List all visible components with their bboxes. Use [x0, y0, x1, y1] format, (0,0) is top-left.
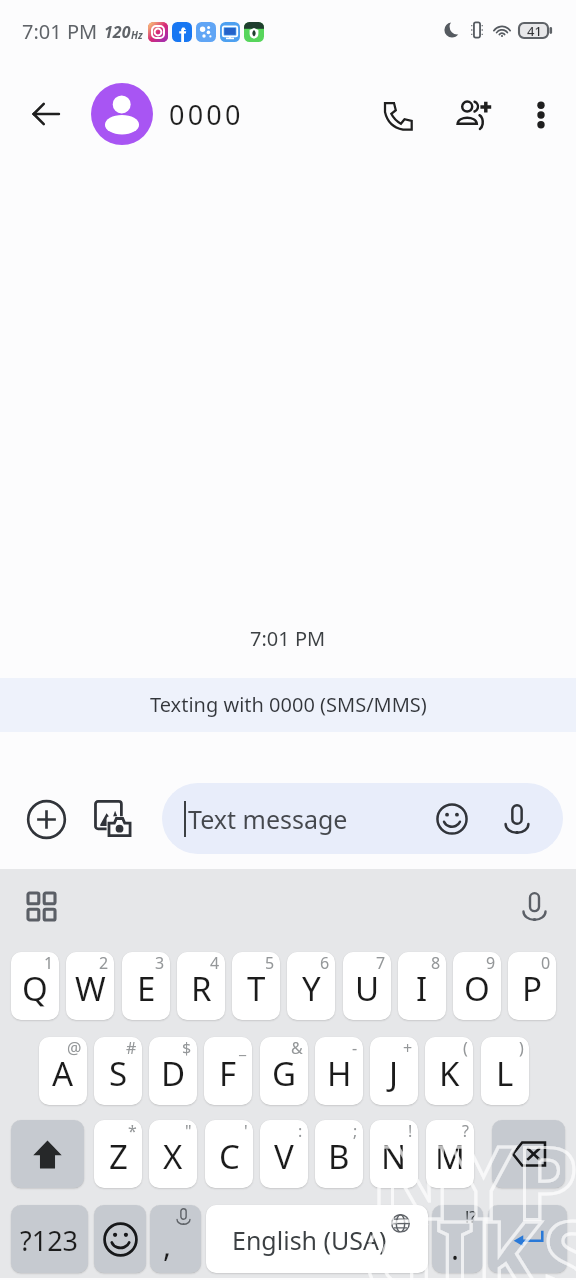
button[interactable]: ; — [315, 1120, 363, 1188]
staticText: 120 — [104, 21, 131, 43]
staticText: 7 — [376, 952, 386, 974]
button[interactable]: Period — [432, 1205, 483, 1273]
staticText: . — [451, 1228, 460, 1269]
button[interactable]: Text message — [162, 783, 563, 854]
staticText: * — [128, 1120, 137, 1142]
staticText: 8 — [431, 952, 441, 974]
staticText: D — [161, 1051, 186, 1096]
button[interactable]: Add person — [445, 86, 502, 143]
staticText: 1 — [44, 952, 54, 974]
staticText: ? — [462, 1120, 469, 1142]
staticText: 0000 — [169, 96, 244, 133]
staticText: ; — [353, 1120, 358, 1142]
staticText: 41 — [527, 22, 542, 39]
button[interactable]: Enter — [488, 1205, 567, 1273]
button[interactable]: Emoji — [94, 1205, 146, 1273]
button[interactable]: ! — [370, 1120, 418, 1188]
staticText: " — [185, 1120, 192, 1142]
button[interactable]: Call — [368, 86, 425, 143]
staticText: ( — [463, 1037, 468, 1059]
button[interactable]: _ — [204, 1037, 252, 1105]
button[interactable]: # — [94, 1037, 142, 1105]
button[interactable]: : — [260, 1120, 308, 1188]
staticText: X — [163, 1134, 183, 1179]
button[interactable]: Backspace — [492, 1120, 565, 1188]
button[interactable]: ?123 — [11, 1205, 88, 1273]
staticText: ) — [519, 1037, 524, 1059]
button[interactable]: Comma — [150, 1205, 201, 1273]
staticText: N — [381, 1134, 407, 1179]
staticText: Hz — [131, 28, 143, 42]
staticText: 5 — [265, 952, 275, 974]
staticText: S — [109, 1051, 128, 1096]
button[interactable]: 8 — [398, 952, 446, 1020]
staticText: 4 — [210, 952, 220, 974]
button[interactable]: More options — [512, 86, 569, 143]
button[interactable]: & — [260, 1037, 308, 1105]
button[interactable]: 1 — [11, 952, 59, 1020]
staticText: , — [163, 1225, 172, 1266]
button[interactable]: ' — [205, 1120, 253, 1188]
staticText: _ — [239, 1037, 247, 1059]
staticText: H — [327, 1051, 352, 1096]
button[interactable]: English (USA) — [206, 1205, 428, 1273]
button[interactable]: Voice message — [493, 795, 541, 843]
staticText: ' — [244, 1120, 248, 1142]
button[interactable]: 5 — [232, 952, 280, 1020]
button[interactable]: ( — [425, 1037, 473, 1105]
staticText: V — [274, 1134, 294, 1179]
staticText: U — [355, 966, 380, 1011]
button[interactable]: 4 — [177, 952, 225, 1020]
staticText: : — [298, 1120, 303, 1142]
button[interactable]: Back — [22, 90, 70, 138]
staticText: @ — [67, 1037, 82, 1059]
staticText: T — [247, 966, 266, 1011]
button[interactable]: ) — [481, 1037, 529, 1105]
staticText: F — [219, 1051, 237, 1096]
staticText: R — [191, 966, 212, 1011]
button[interactable]: Gallery — [82, 788, 143, 849]
button[interactable]: - — [315, 1037, 363, 1105]
staticText: + — [403, 1037, 413, 1059]
button[interactable]: + — [370, 1037, 418, 1105]
button[interactable]: More actions — [14, 787, 79, 852]
button[interactable]: " — [149, 1120, 197, 1188]
staticText: W — [75, 966, 106, 1011]
staticText: Texting with 0000 (SMS/MMS) — [150, 691, 427, 718]
button[interactable]: ? — [426, 1120, 474, 1188]
staticText: ?123 — [20, 1222, 79, 1259]
button[interactable]: 0 — [508, 952, 556, 1020]
staticText: $ — [182, 1037, 192, 1059]
staticText: 0 — [541, 952, 551, 974]
staticText: # — [126, 1037, 137, 1059]
staticText: NYP — [370, 1112, 576, 1248]
button[interactable]: 0000 — [91, 83, 244, 145]
staticText: O — [464, 966, 490, 1011]
button[interactable]: Voice input — [507, 879, 562, 934]
staticText: K — [439, 1051, 460, 1096]
button[interactable]: 7 — [343, 952, 391, 1020]
staticText: 9 — [486, 952, 496, 974]
staticText: 6 — [320, 952, 330, 974]
button[interactable]: 6 — [287, 952, 335, 1020]
staticText: Z — [109, 1134, 128, 1179]
staticText: Y — [302, 966, 321, 1011]
button[interactable]: 9 — [453, 952, 501, 1020]
staticText: J — [389, 1051, 399, 1096]
button[interactable]: Keyboard menu — [14, 879, 69, 934]
button[interactable]: 2 — [66, 952, 114, 1020]
button[interactable]: $ — [149, 1037, 197, 1105]
staticText: & — [291, 1037, 303, 1059]
staticText: A — [52, 1051, 74, 1096]
staticText: English (USA) — [232, 1223, 387, 1257]
button[interactable]: @ — [39, 1037, 87, 1105]
button[interactable]: 3 — [122, 952, 170, 1020]
staticText: L — [496, 1051, 514, 1096]
button[interactable]: Emoji — [428, 795, 476, 843]
staticText: I — [416, 966, 428, 1011]
button[interactable]: * — [94, 1120, 142, 1188]
staticText: M — [435, 1134, 465, 1179]
staticText: - — [352, 1037, 358, 1059]
button[interactable]: Shift — [11, 1120, 84, 1188]
staticText: C — [219, 1134, 240, 1179]
